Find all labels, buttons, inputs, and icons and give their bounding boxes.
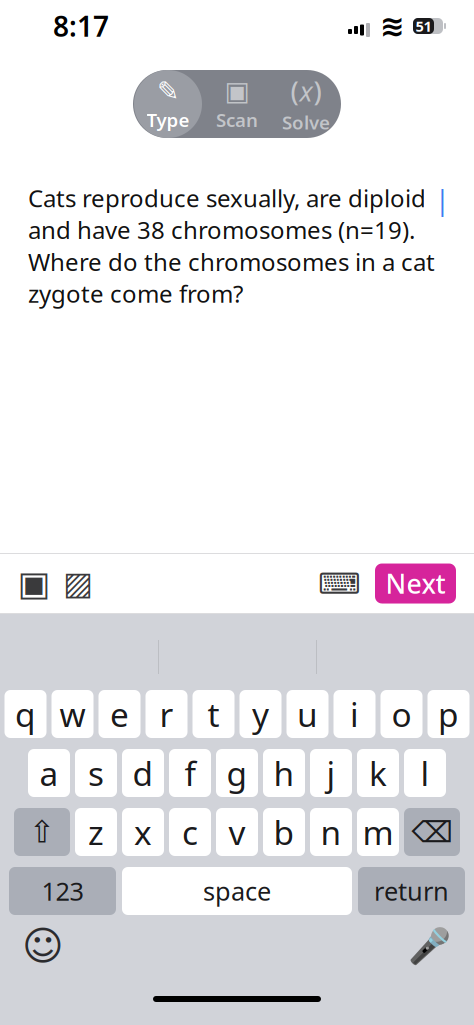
button[interactable]: m <box>357 808 399 856</box>
staticText: 51 <box>415 16 431 36</box>
staticText: p <box>438 692 459 736</box>
staticText: ⇧ <box>29 815 55 849</box>
staticText: s <box>88 751 104 795</box>
button[interactable]: r <box>145 690 187 738</box>
button[interactable]: y <box>239 690 281 738</box>
button[interactable]: i <box>333 690 375 738</box>
staticText: ✎ <box>157 76 179 106</box>
button[interactable]: l <box>404 749 446 797</box>
button[interactable]: Take photo <box>12 561 56 605</box>
button[interactable]: Next <box>375 563 456 603</box>
button[interactable]: Emoji <box>20 923 66 969</box>
staticText: o <box>391 692 411 736</box>
staticText: space <box>203 874 271 908</box>
button[interactable]: s <box>75 749 117 797</box>
staticText: b <box>273 810 294 854</box>
staticText: h <box>273 751 294 795</box>
button[interactable]: Hide keyboard <box>317 561 361 605</box>
staticText: e <box>110 692 129 736</box>
staticText: r <box>159 692 173 736</box>
staticText: ▨ <box>63 565 93 602</box>
staticText: x <box>134 810 152 854</box>
staticText: 8:17 <box>53 7 109 45</box>
button[interactable]: h <box>263 749 305 797</box>
button[interactable]: q <box>4 690 46 738</box>
staticText: n <box>320 810 341 854</box>
button[interactable]: n <box>310 808 352 856</box>
button[interactable]: space <box>122 867 352 915</box>
button[interactable]: Shift <box>14 808 70 856</box>
staticText: ▣ <box>224 76 249 106</box>
button[interactable]: Delete <box>404 808 460 856</box>
staticText: m <box>362 810 393 854</box>
staticText: ≋ <box>380 9 405 43</box>
button[interactable]: j <box>310 749 352 797</box>
button[interactable]: c <box>169 808 211 856</box>
button[interactable]: x <box>122 808 164 856</box>
staticText: t <box>207 692 219 736</box>
staticText: Next <box>385 566 445 601</box>
button[interactable]: Numbers <box>9 867 116 915</box>
staticText: q <box>15 692 36 736</box>
staticText: z <box>88 810 104 854</box>
staticText: 🎤 <box>407 926 450 966</box>
staticText: ⌫ <box>411 815 452 849</box>
staticText: d <box>132 751 153 795</box>
staticText: | <box>435 182 450 217</box>
staticText: ☺ <box>22 923 64 969</box>
button[interactable]: a <box>28 749 70 797</box>
staticText: y <box>252 692 269 736</box>
staticText: c <box>182 810 198 854</box>
staticText: Solve <box>282 110 330 135</box>
staticText: Scan <box>216 107 258 132</box>
staticText: 123 <box>41 874 83 908</box>
button[interactable]: k <box>357 749 399 797</box>
button[interactable]: w <box>51 690 93 738</box>
staticText: i <box>350 692 359 736</box>
button[interactable]: ▣ <box>202 70 271 138</box>
button[interactable]: b <box>263 808 305 856</box>
button[interactable]: g <box>216 749 258 797</box>
staticText: w <box>59 692 85 736</box>
staticText: (𝑥) <box>290 73 321 109</box>
button[interactable]: f <box>169 749 211 797</box>
staticText: u <box>297 692 318 736</box>
staticText: ▣ <box>17 564 50 603</box>
staticText: return <box>374 874 449 908</box>
staticText: a <box>39 751 58 795</box>
button[interactable]: Choose image <box>56 561 100 605</box>
staticText: l <box>420 751 429 795</box>
button[interactable]: Return <box>358 867 465 915</box>
staticText: ⌨ <box>318 567 360 600</box>
staticText: Type <box>146 107 189 132</box>
button[interactable]: d <box>122 749 164 797</box>
button[interactable]: z <box>75 808 117 856</box>
button[interactable]: ✎ <box>133 70 202 138</box>
button[interactable]: v <box>216 808 258 856</box>
staticText: v <box>228 810 245 854</box>
staticText: k <box>369 751 387 795</box>
button[interactable]: (𝑥) <box>271 70 340 138</box>
button[interactable]: o <box>380 690 422 738</box>
staticText: Cats reproduce sexually, are diploid and… <box>28 182 435 309</box>
button[interactable]: e <box>98 690 140 738</box>
button[interactable]: p <box>427 690 469 738</box>
staticText: f <box>184 751 195 795</box>
button[interactable]: t <box>192 690 234 738</box>
staticText: g <box>226 751 247 795</box>
button[interactable]: u <box>286 690 328 738</box>
staticText: j <box>326 751 335 795</box>
button[interactable]: Dictate <box>406 923 452 969</box>
